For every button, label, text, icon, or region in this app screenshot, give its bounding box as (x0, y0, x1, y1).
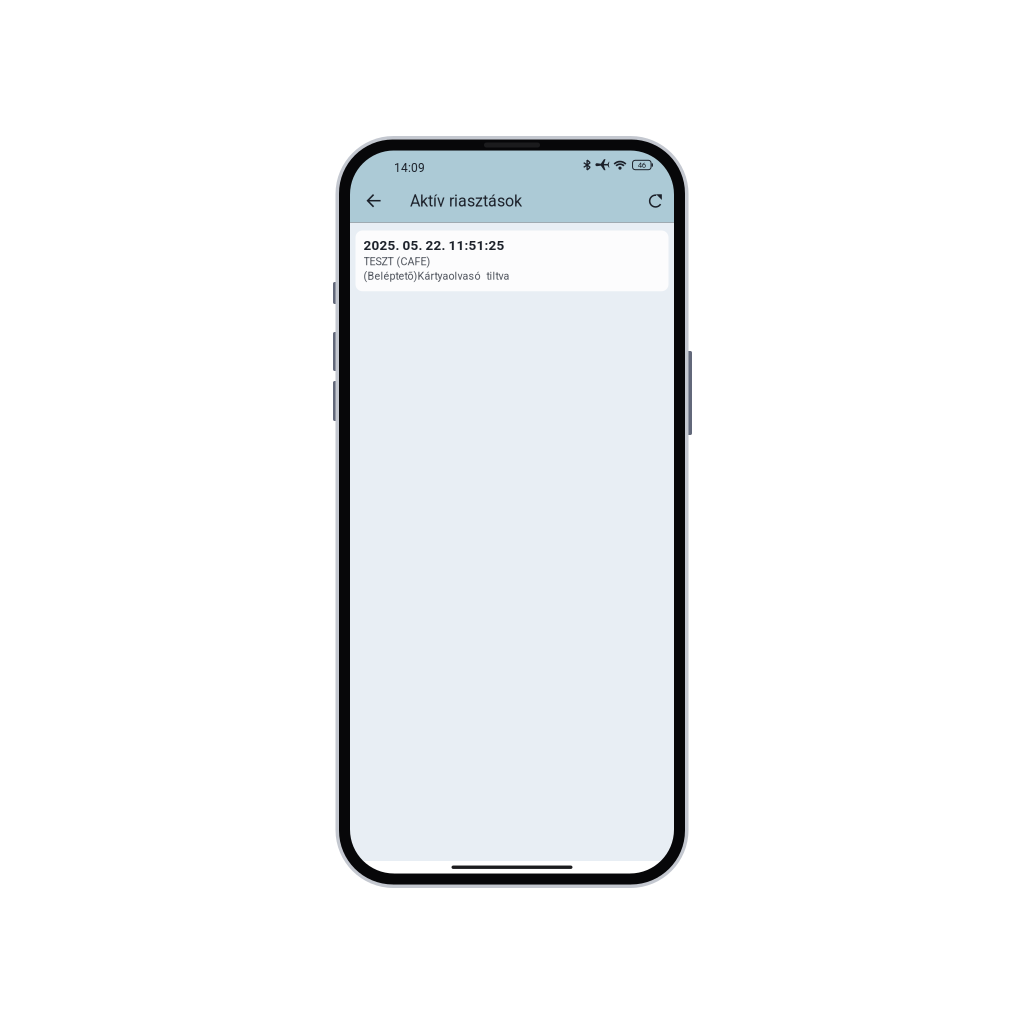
button[interactable]: Refresh (640, 182, 674, 219)
staticText: Aktív riasztások (410, 192, 522, 210)
staticText: TESZT (CAFE) (363, 255, 430, 268)
button[interactable]: Back (354, 182, 394, 219)
staticText: (Beléptetõ)Kártyaolvasó tiltva (363, 270, 509, 282)
staticText: 46 (638, 160, 646, 170)
button[interactable]: 2025. 05. 22. 11:51:25 (355, 230, 668, 291)
staticText: 14:09 (394, 161, 425, 175)
staticText: 2025. 05. 22. 11:51:25 (363, 237, 504, 253)
